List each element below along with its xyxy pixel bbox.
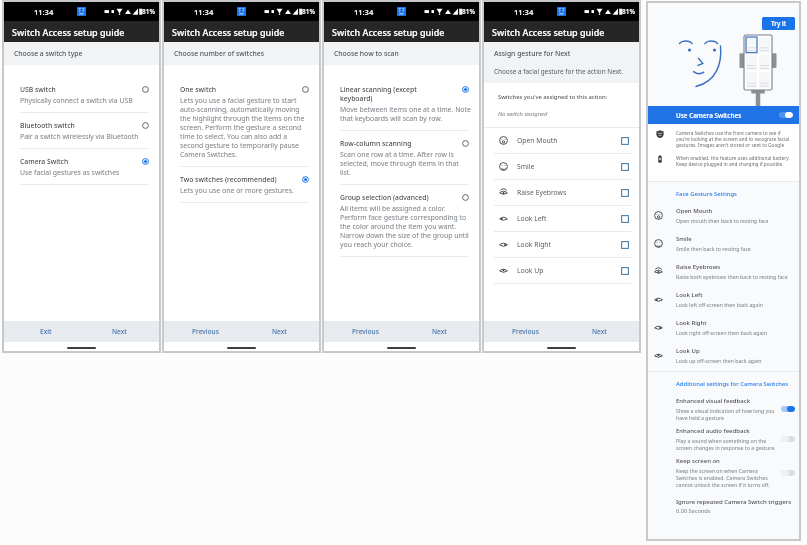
button[interactable]: USB switch [4,77,159,113]
staticText: Switch Access setup guide [172,26,285,38]
staticText: Next [272,327,287,336]
staticText: Look Right [517,240,551,249]
staticText: Choose how to scan [334,49,399,58]
button[interactable]: Open Mouth [648,201,799,229]
button[interactable]: Next [588,324,611,339]
staticText: Group selection (advanced) [340,193,429,202]
staticText: Next [432,327,447,336]
button[interactable]: Exit [36,324,56,339]
staticText: Keep screen on [676,457,720,465]
staticText: Linear scanning (except keyboard) [340,85,445,103]
staticText: Look left off-screen then back again [676,301,764,308]
staticText: 81% [622,7,635,16]
staticText: 0.00 Seconds [676,507,711,515]
staticText: Physically connect a switch via USB [20,96,133,105]
button[interactable]: Ignore repeated Camera Switch triggers [648,488,799,515]
staticText: Raise Eyebrows [517,188,567,197]
staticText: Additional settings for Camera Switches [676,380,789,388]
button[interactable]: Smile [484,154,639,180]
button[interactable]: Row-column scanning [324,131,479,185]
staticText: Ignore repeated Camera Switch triggers [676,498,792,506]
staticText: Show a visual indication of how long you… [676,407,777,421]
button[interactable]: Raise Eyebrows [648,257,799,285]
button[interactable]: Use Camera Switches [648,106,799,124]
staticText: 81% [462,7,475,16]
button[interactable]: Smile [648,229,799,257]
staticText: Move between items one at a time. Note t… [340,105,471,123]
staticText: Look Up [517,266,544,275]
staticText: Switch Access setup guide [332,26,445,38]
staticText: Open mouth then back to resting face [676,217,769,224]
button[interactable]: Try it [762,17,795,30]
staticText: Raise both eyebrows then back to resting… [676,273,788,280]
staticText: Next [592,327,607,336]
staticText: Try it [771,19,787,28]
staticText: Smile [676,235,692,243]
button[interactable]: Enhanced visual feedback [648,391,799,421]
staticText: Enhanced audio feedback [676,427,750,435]
staticText: Use Camera Switches [676,111,742,120]
button[interactable]: Look Up [648,341,799,369]
staticText: Look Left [517,214,547,223]
staticText: Lets you use a facial gesture to start a… [180,96,311,159]
button[interactable]: Bluetooth switch [4,113,159,149]
button[interactable]: Next [108,324,131,339]
staticText: Previous [512,327,539,336]
staticText: Play a sound when something on the scree… [676,437,777,451]
staticText: Camera Switches use the front camera to … [676,130,793,148]
button[interactable]: Look Left [648,285,799,313]
staticText: Choose number of switches [174,49,264,58]
staticText: Look up off-screen then back again [676,357,762,364]
staticText: Keep the screen on when Camera Switches … [676,467,777,488]
button[interactable]: Look Left [484,206,639,232]
staticText: USB switch [20,85,56,94]
staticText: Raise Eyebrows [676,263,721,271]
staticText: Next [112,327,127,336]
button[interactable]: Previous [508,324,543,339]
staticText: Scan one row at a time. After row is sel… [340,150,471,177]
staticText: Assign gesture for Next [494,49,571,58]
staticText: Open Mouth [517,136,558,145]
staticText: When enabled, this feature uses addition… [676,155,793,167]
staticText: Smile then back to resting face [676,245,751,252]
staticText: Look Right [676,319,707,327]
staticText: Look right off-screen then back again [676,329,767,336]
staticText: Smile [517,162,535,171]
staticText: Camera Switch [20,157,69,166]
button[interactable]: Open Mouth [484,128,639,154]
staticText: Exit [40,327,52,336]
staticText: All items will be assigned a color. Perf… [340,204,471,249]
staticText: Pair a switch wirelessly via Bluetooth [20,132,139,141]
button[interactable]: Camera Switch [4,149,159,185]
staticText: One switch [180,85,217,94]
staticText: Enhanced visual feedback [676,397,751,405]
button[interactable]: Previous [188,324,223,339]
staticText: Previous [352,327,379,336]
staticText: Look Left [676,291,703,299]
staticText: 11:34 [514,7,534,17]
button[interactable]: Look Up [484,258,639,284]
button[interactable]: Two switches (recommended) [164,167,319,203]
button[interactable]: Keep screen on [648,451,799,488]
staticText: Choose a facial gesture for the action N… [494,67,624,76]
staticText: Bluetooth switch [20,121,75,130]
staticText: Switches you've assigned to this action: [498,93,608,101]
button[interactable]: Look Right [484,232,639,258]
button[interactable]: Linear scanning (except keyboard) [324,77,479,131]
button[interactable]: Enhanced audio feedback [648,421,799,451]
staticText: Two switches (recommended) [180,175,277,184]
button[interactable]: Raise Eyebrows [484,180,639,206]
staticText: Lets you use one or more gestures. [180,186,294,195]
staticText: Switch Access setup guide [492,26,605,38]
staticText: No switch assigned [498,110,548,118]
button[interactable]: Previous [348,324,383,339]
button[interactable]: Look Right [648,313,799,341]
staticText: 81% [302,7,315,16]
staticText: 11:34 [194,7,214,17]
button[interactable]: One switch [164,77,319,167]
button[interactable]: Next [268,324,291,339]
button[interactable]: Group selection (advanced) [324,185,479,257]
staticText: 81% [142,7,155,16]
button[interactable]: Next [428,324,451,339]
staticText: Switch Access setup guide [12,26,125,38]
